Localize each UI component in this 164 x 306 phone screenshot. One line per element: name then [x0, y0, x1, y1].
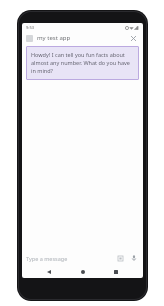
button[interactable]: Howdy! I can tell you fun facts about al… — [26, 46, 139, 80]
button[interactable]: Close — [128, 33, 139, 44]
staticText: my test app — [37, 34, 71, 42]
button[interactable]: Recent apps — [109, 265, 123, 278]
button[interactable]: Back — [42, 265, 56, 278]
button[interactable]: Keyboard — [115, 253, 125, 263]
staticText: Type a message — [26, 255, 68, 262]
button[interactable]: Type a message — [26, 251, 139, 265]
button[interactable]: Home — [76, 265, 90, 278]
staticText: Howdy! I can tell you fun facts about al… — [31, 51, 134, 75]
staticText: 9:53 — [26, 25, 34, 30]
button[interactable]: Voice input — [129, 253, 139, 263]
